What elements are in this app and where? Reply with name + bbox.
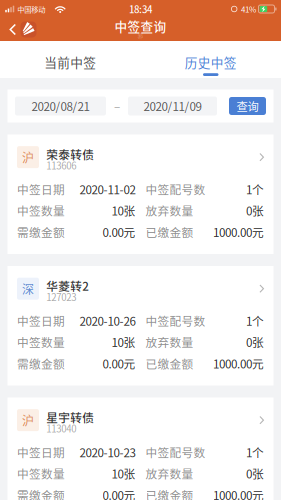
button[interactable]: 2020/11/09 <box>128 96 217 115</box>
staticText: 1000.00元 <box>213 223 264 240</box>
staticText: 2020-11-02 <box>79 181 135 198</box>
staticText: 1个 <box>246 312 264 329</box>
button[interactable]: 沪 <box>0 397 281 500</box>
staticText: 1000.00元 <box>213 486 264 500</box>
staticText: 10张 <box>111 465 135 482</box>
staticText: 已缴金额 <box>145 223 193 240</box>
staticText: 郛 <box>137 31 143 39</box>
staticText: 2020/11/09 <box>143 98 201 114</box>
staticText: 放弃数量 <box>145 334 193 350</box>
staticText: 10张 <box>111 202 135 219</box>
staticText: 0张 <box>246 202 264 219</box>
staticText: 113606 <box>46 158 76 172</box>
staticText: 2020/08/21 <box>31 98 89 114</box>
button[interactable]: Back <box>0 18 42 41</box>
staticText: 需缴金额 <box>17 223 65 240</box>
staticText: 中签日期 <box>17 181 65 198</box>
staticText: 0.00元 <box>102 355 135 372</box>
staticText: 深 <box>22 280 34 297</box>
staticText: 查询 <box>236 98 258 114</box>
staticText: 中签配号数 <box>145 444 205 461</box>
staticText: – <box>114 98 120 114</box>
staticText: 10张 <box>111 334 135 350</box>
staticText: 中签日期 <box>17 312 65 329</box>
staticText: 星宇转债 <box>46 409 94 426</box>
staticText: 2020-10-23 <box>79 444 135 461</box>
staticText: 中签数量 <box>17 334 65 350</box>
staticText: 中签数量 <box>17 202 65 219</box>
staticText: 荣泰转债 <box>46 146 94 163</box>
staticText: 中签配号数 <box>145 312 205 329</box>
staticText: 放弃数量 <box>145 202 193 219</box>
staticText: 中国移动 <box>17 4 45 14</box>
staticText: 沪 <box>22 411 34 429</box>
staticText: 0张 <box>246 465 264 482</box>
staticText: 2020-10-26 <box>79 312 135 329</box>
staticText: 放弃数量 <box>145 465 193 482</box>
staticText: 已缴金额 <box>145 355 193 372</box>
button[interactable]: 历史中签 <box>140 41 281 78</box>
staticText: 0.00元 <box>102 223 135 240</box>
staticText: 中签日期 <box>17 444 65 461</box>
staticText: 1个 <box>246 181 264 198</box>
staticText: 中签查询 <box>114 17 166 35</box>
button[interactable]: 查询 <box>229 97 266 115</box>
staticText: 沪 <box>22 148 34 166</box>
staticText: 中签配号数 <box>145 181 205 198</box>
button[interactable]: 当前中签 <box>0 41 140 78</box>
staticText: 127023 <box>46 290 76 304</box>
staticText: 0.00元 <box>102 486 135 500</box>
staticText: 113040 <box>46 421 76 435</box>
staticText: 历史中签 <box>185 53 237 71</box>
button[interactable]: 2020/08/21 <box>15 96 106 115</box>
staticText: 41% <box>241 3 256 15</box>
staticText: 1000.00元 <box>213 355 264 372</box>
staticText: 1个 <box>246 444 264 461</box>
staticText: 18:34 <box>129 2 152 16</box>
button[interactable]: 沪 <box>0 134 281 254</box>
staticText: 当前中签 <box>44 53 96 71</box>
staticText: 需缴金额 <box>17 355 65 372</box>
staticText: 中签数量 <box>17 465 65 482</box>
staticText: 0张 <box>246 334 264 350</box>
staticText: 需缴金额 <box>17 486 65 500</box>
button[interactable]: 深 <box>0 266 281 385</box>
staticText: 已缴金额 <box>145 486 193 500</box>
staticText: 华菱转2 <box>46 277 89 294</box>
